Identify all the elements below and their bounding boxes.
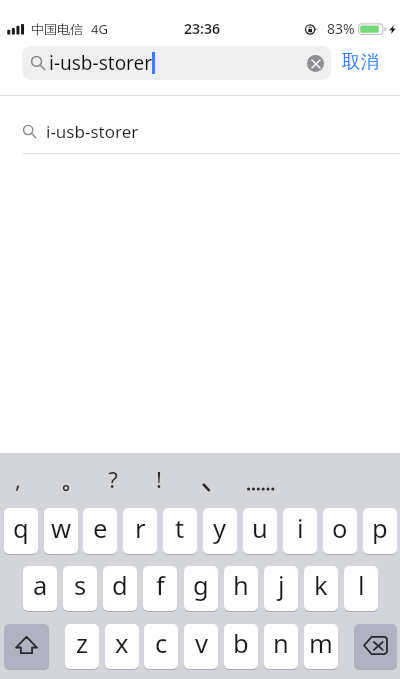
staticText: x xyxy=(115,626,129,661)
button[interactable]: Period xyxy=(43,467,89,513)
staticText: i xyxy=(297,511,304,546)
button[interactable]: f xyxy=(143,566,177,611)
staticText: k xyxy=(314,568,328,603)
button[interactable]: l xyxy=(344,566,378,611)
staticText: r xyxy=(135,511,146,546)
button[interactable]: i-usb-storer xyxy=(0,95,400,153)
staticText: a xyxy=(33,568,48,603)
staticText: i-usb-storer xyxy=(46,120,139,143)
button[interactable]: d xyxy=(103,566,137,611)
staticText: h xyxy=(233,568,249,603)
button[interactable]: k xyxy=(304,566,338,611)
button[interactable]: j xyxy=(264,566,298,611)
staticText: l xyxy=(358,568,365,603)
button[interactable]: g xyxy=(184,566,218,611)
button[interactable]: u xyxy=(243,508,277,554)
staticText: d xyxy=(112,568,128,603)
button[interactable]: t xyxy=(163,508,197,554)
staticText: 23:36 xyxy=(184,19,220,38)
button[interactable]: z xyxy=(65,624,99,669)
staticText: j xyxy=(278,568,285,603)
button[interactable]: q xyxy=(4,508,38,554)
staticText: o xyxy=(332,511,348,546)
button[interactable]: y xyxy=(203,508,237,554)
button[interactable]: m xyxy=(304,624,338,669)
staticText: z xyxy=(76,626,88,661)
staticText: q xyxy=(13,511,29,546)
staticText: ! xyxy=(156,464,162,494)
button[interactable]: i xyxy=(283,508,317,554)
button[interactable]: Enumeration comma xyxy=(183,467,229,513)
button[interactable]: b xyxy=(224,624,258,669)
button[interactable]: v xyxy=(184,624,218,669)
button[interactable]: p xyxy=(363,508,397,554)
button[interactable]: r xyxy=(123,508,157,554)
button[interactable]: c xyxy=(144,624,178,669)
staticText: v xyxy=(195,626,208,661)
button[interactable]: w xyxy=(44,508,78,554)
staticText: f xyxy=(156,568,165,603)
staticText: 中国电信 xyxy=(31,21,83,37)
button[interactable]: ! xyxy=(136,456,182,502)
staticText: n xyxy=(273,626,289,661)
staticText: t xyxy=(175,511,185,546)
button[interactable]: , xyxy=(0,456,41,502)
staticText: u xyxy=(252,511,268,546)
button[interactable]: Shift xyxy=(4,624,49,669)
button[interactable]: s xyxy=(63,566,97,611)
button[interactable]: n xyxy=(264,624,298,669)
button[interactable]: ? xyxy=(90,456,136,502)
staticText: m xyxy=(309,626,333,661)
button[interactable]: e xyxy=(83,508,117,554)
button[interactable]: Ellipsis xyxy=(237,467,283,513)
button[interactable]: Clear text xyxy=(307,55,324,72)
staticText: 83% xyxy=(327,19,355,38)
staticText: , xyxy=(15,464,21,494)
staticText: p xyxy=(372,511,388,546)
staticText: y xyxy=(213,511,227,546)
staticText: i-usb-storer xyxy=(49,50,153,76)
button[interactable]: a xyxy=(23,566,57,611)
staticText: e xyxy=(93,511,108,546)
button[interactable]: x xyxy=(105,624,139,669)
staticText: c xyxy=(155,626,168,661)
button[interactable]: Backspace xyxy=(354,624,397,669)
staticText: 4G xyxy=(91,20,108,38)
staticText: g xyxy=(193,568,209,603)
staticText: ? xyxy=(108,464,118,494)
staticText: b xyxy=(233,626,249,661)
button[interactable]: o xyxy=(323,508,357,554)
staticText: s xyxy=(74,568,87,603)
button[interactable]: h xyxy=(224,566,258,611)
staticText: 取消 xyxy=(342,50,379,73)
button[interactable]: 取消 xyxy=(336,47,384,77)
staticText: w xyxy=(51,511,72,546)
button[interactable]: i-usb-storer xyxy=(22,46,331,80)
